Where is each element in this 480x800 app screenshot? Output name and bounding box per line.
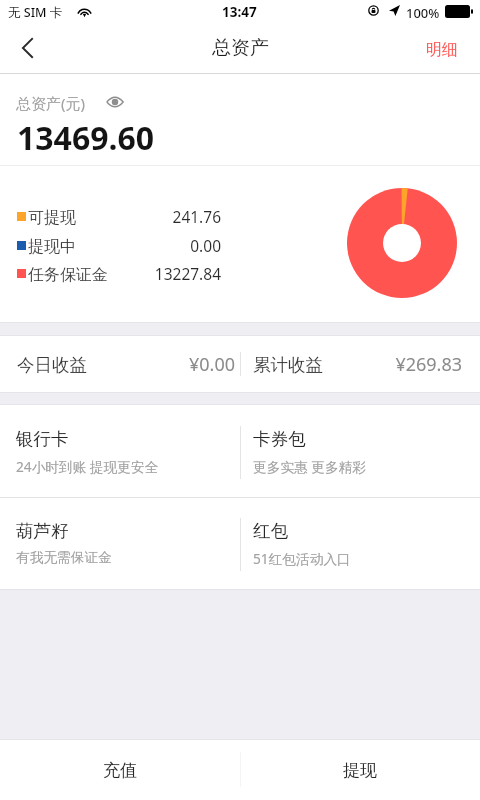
- staticText: 葫芦籽: [16, 520, 69, 542]
- button[interactable]: 卡券包: [240, 405, 480, 497]
- staticText: 提现中: [28, 237, 76, 257]
- staticText: 提现: [343, 760, 377, 781]
- staticText: 更多实惠 更多精彩: [253, 457, 367, 476]
- staticText: 0.00: [110, 235, 221, 256]
- staticText: ¥0.00: [120, 352, 235, 377]
- button[interactable]: 提现: [240, 740, 480, 800]
- staticText: 13469.60: [17, 116, 155, 160]
- staticText: 13227.84: [110, 263, 221, 284]
- staticText: 银行卡: [16, 428, 69, 450]
- staticText: 卡券包: [253, 428, 306, 450]
- staticText: 13:47: [222, 3, 257, 21]
- staticText: 24小时到账 提现更安全: [16, 457, 159, 476]
- button[interactable]: Toggle balance visibility: [105, 94, 125, 110]
- staticText: 任务保证金: [28, 265, 108, 285]
- staticText: 51红包活动入口: [253, 549, 351, 568]
- button[interactable]: Back: [4, 24, 50, 72]
- staticText: ¥269.83: [340, 352, 462, 377]
- staticText: 累计收益: [253, 354, 323, 376]
- staticText: 今日收益: [17, 354, 87, 376]
- button[interactable]: 累计收益: [240, 336, 480, 392]
- staticText: 总资产: [212, 36, 269, 60]
- button[interactable]: 红包: [240, 497, 480, 589]
- staticText: 100%: [406, 4, 440, 22]
- staticText: 明细: [426, 40, 458, 60]
- button[interactable]: 银行卡: [0, 405, 240, 497]
- staticText: 无 SIM 卡: [8, 4, 63, 21]
- button[interactable]: 充值: [0, 740, 240, 800]
- staticText: 有我无需保证金: [16, 549, 112, 566]
- staticText: 总资产(元): [16, 93, 86, 113]
- staticText: 241.76: [110, 206, 221, 227]
- staticText: 红包: [253, 520, 288, 542]
- button[interactable]: 明细: [426, 26, 458, 74]
- button[interactable]: 今日收益: [0, 336, 240, 392]
- button[interactable]: 葫芦籽: [0, 497, 240, 589]
- staticText: 充值: [103, 760, 137, 781]
- staticText: 可提现: [28, 208, 76, 228]
